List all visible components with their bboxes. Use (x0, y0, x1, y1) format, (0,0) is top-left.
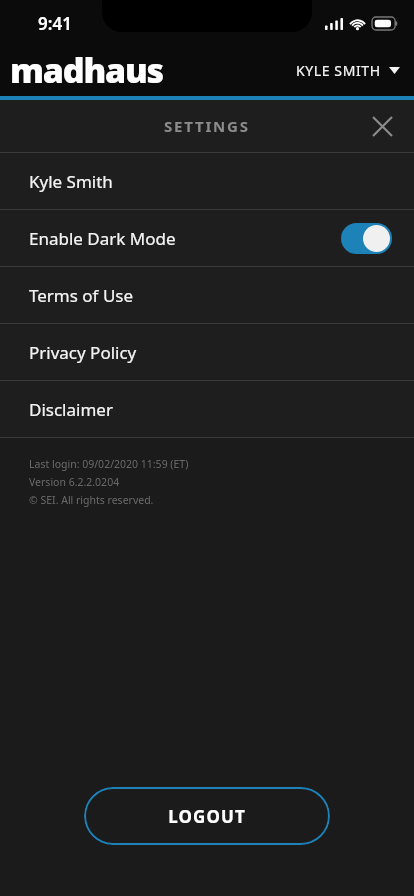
staticText: Terms of Use (29, 284, 134, 307)
staticText: Privacy Policy (29, 341, 137, 364)
button[interactable]: madhaus (10, 47, 163, 93)
staticText: Disclaimer (29, 398, 113, 421)
staticText: Enable Dark Mode (29, 227, 176, 250)
button[interactable]: Close settings (360, 104, 404, 148)
button[interactable]: Terms of Use (0, 267, 414, 323)
staticText: 9:41 (38, 12, 72, 35)
staticText: © SEI. All rights reserved. (29, 493, 154, 507)
button[interactable]: KYLE SMITH (296, 61, 400, 80)
button[interactable]: Privacy Policy (0, 324, 414, 380)
staticText: LOGOUT (168, 805, 246, 828)
staticText: Kyle Smith (29, 170, 113, 193)
button[interactable]: Disclaimer (0, 381, 414, 437)
button[interactable]: LOGOUT (84, 787, 330, 845)
staticText: KYLE SMITH (296, 61, 381, 80)
button[interactable]: Enable Dark Mode (0, 210, 414, 266)
button[interactable]: Dark mode toggle, on (341, 223, 392, 254)
staticText: SETTINGS (164, 116, 250, 136)
button[interactable]: Kyle Smith (0, 153, 414, 209)
staticText: Last login: 09/02/2020 11:59 (ET) (29, 457, 189, 471)
staticText: Version 6.2.2.0204 (29, 475, 120, 489)
